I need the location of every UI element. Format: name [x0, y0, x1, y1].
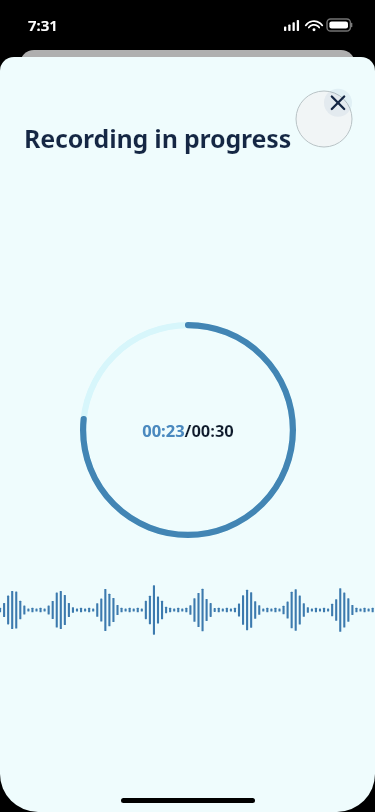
staticText: 00:23/00:30 [142, 419, 234, 441]
staticText: 7:31 [28, 15, 58, 35]
staticText: Recording in progress [24, 121, 291, 155]
button[interactable]: Close [293, 82, 355, 144]
